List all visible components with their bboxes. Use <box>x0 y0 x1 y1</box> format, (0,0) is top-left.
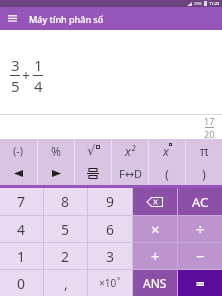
button[interactable]: x² <box>112 139 148 162</box>
button[interactable] <box>8 15 17 22</box>
button[interactable]: + <box>133 243 177 269</box>
staticText: ×10 <box>99 276 117 290</box>
staticText: 3 <box>11 55 20 75</box>
staticText: + <box>22 66 31 85</box>
staticText: 4 <box>17 220 26 239</box>
button[interactable]: , <box>44 270 87 296</box>
staticText: ( <box>165 165 169 183</box>
staticText: 11:23 <box>209 1 220 6</box>
button[interactable]: 0 <box>0 270 43 296</box>
button[interactable] <box>75 162 111 185</box>
button[interactable] <box>0 162 37 185</box>
staticText: (-) <box>13 143 24 158</box>
staticText: 1 <box>34 55 43 75</box>
staticText: % <box>51 143 61 159</box>
button[interactable]: 3 <box>88 243 132 269</box>
button[interactable]: × <box>133 216 177 242</box>
staticText: − <box>196 246 205 266</box>
staticText: 4 <box>34 76 43 96</box>
staticText: 17 <box>204 115 215 127</box>
staticText: , <box>64 274 68 293</box>
staticText: 5 <box>11 76 20 96</box>
staticText: 2 <box>61 247 70 266</box>
button[interactable]: = <box>178 270 222 296</box>
button[interactable]: % <box>38 139 74 162</box>
staticText: AC <box>192 193 209 211</box>
button[interactable]: F↔D <box>112 162 148 185</box>
button[interactable] <box>133 188 177 215</box>
staticText: + <box>151 246 160 266</box>
staticText: Máy tính phân số <box>29 13 104 25</box>
staticText: 3 <box>106 247 115 266</box>
staticText: 6 <box>106 220 115 239</box>
staticText: 0 <box>17 274 26 293</box>
button[interactable]: ANS <box>133 270 177 296</box>
button[interactable] <box>38 162 74 185</box>
button[interactable]: ÷ <box>178 216 222 242</box>
staticText: π <box>200 142 209 160</box>
staticText: ANS <box>143 275 167 291</box>
button[interactable]: 8 <box>44 188 87 215</box>
button[interactable]: (-) <box>0 139 37 162</box>
button[interactable]: 9 <box>88 188 132 215</box>
staticText: 7 <box>17 192 26 211</box>
button[interactable]: ( <box>149 162 185 185</box>
staticText: √ <box>87 143 96 158</box>
staticText: × <box>151 219 160 239</box>
button[interactable]: x <box>149 139 185 162</box>
button[interactable]: AC <box>178 188 222 215</box>
staticText: = <box>196 273 205 293</box>
staticText: ) <box>202 165 206 183</box>
staticText: x <box>117 274 121 282</box>
button[interactable]: 7 <box>0 188 43 215</box>
staticText: 1 <box>17 247 26 266</box>
staticText: F↔D <box>119 166 142 181</box>
staticText: ÷ <box>196 219 205 239</box>
button[interactable]: ×10 <box>88 270 132 296</box>
button[interactable]: ) <box>186 162 222 185</box>
button[interactable]: 5 <box>44 216 87 242</box>
staticText: 8 <box>61 192 70 211</box>
button[interactable]: 4 <box>0 216 43 242</box>
staticText: 29% <box>194 1 202 6</box>
button[interactable]: √ <box>75 139 111 162</box>
staticText: 20 <box>204 128 215 139</box>
button[interactable]: 6 <box>88 216 132 242</box>
button[interactable]: π <box>186 139 222 162</box>
staticText: x² <box>125 143 136 159</box>
button[interactable]: 2 <box>44 243 87 269</box>
staticText: 5 <box>61 220 70 239</box>
button[interactable]: 1 <box>0 243 43 269</box>
staticText: 9 <box>106 192 115 211</box>
button[interactable]: − <box>178 243 222 269</box>
staticText: x <box>163 143 169 159</box>
